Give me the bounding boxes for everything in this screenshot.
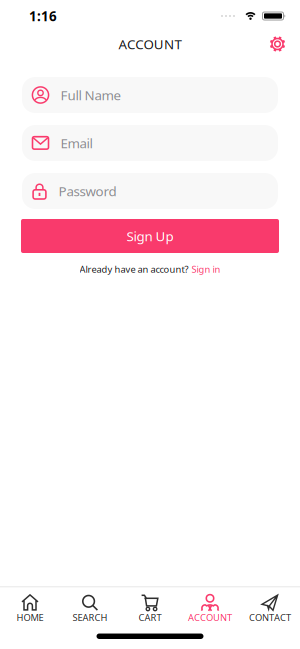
staticText: Sign Up (126, 227, 173, 245)
button[interactable]: Settings (269, 35, 286, 52)
staticText: Password (58, 182, 116, 200)
staticText: SEARCH (72, 611, 107, 624)
staticText: Full Name (60, 86, 121, 104)
button[interactable]: SEARCH (60, 594, 120, 624)
button[interactable]: ACCOUNT (180, 594, 240, 624)
staticText: 1:16 (29, 7, 57, 25)
button[interactable]: Email text field (22, 125, 278, 161)
staticText: Sign in (191, 263, 220, 275)
button[interactable]: Sign Up (21, 219, 279, 253)
button[interactable]: Sign in (191, 263, 220, 275)
button[interactable]: Password text field (22, 173, 278, 209)
button[interactable]: CART (120, 594, 180, 624)
staticText: ACCOUNT (119, 35, 181, 53)
button[interactable]: Full Name text field (22, 77, 278, 113)
button[interactable]: CONTACT (240, 594, 300, 624)
button[interactable]: HOME (0, 594, 60, 624)
staticText: HOME (16, 611, 43, 624)
staticText: Email (60, 134, 92, 152)
staticText: CONTACT (249, 611, 291, 624)
staticText: CART (138, 611, 161, 624)
staticText: Already have an account? (79, 263, 188, 275)
staticText: ACCOUNT (188, 611, 232, 624)
